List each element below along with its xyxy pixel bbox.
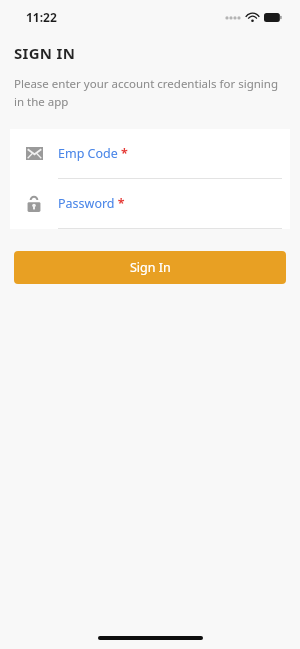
other: Employee code xyxy=(26,147,43,160)
button[interactable]: Sign In xyxy=(14,251,286,284)
staticText: 11:22 xyxy=(26,9,57,25)
staticText: SIGN IN xyxy=(14,43,76,63)
button[interactable]: Password xyxy=(10,179,290,229)
staticText: Emp Code * xyxy=(58,145,128,162)
staticText: Sign In xyxy=(130,259,171,276)
staticText: Password * xyxy=(58,195,125,212)
button[interactable]: Employee code xyxy=(10,129,290,179)
staticText: Please enter your account credentials fo… xyxy=(14,76,286,109)
other: Password xyxy=(27,195,41,212)
